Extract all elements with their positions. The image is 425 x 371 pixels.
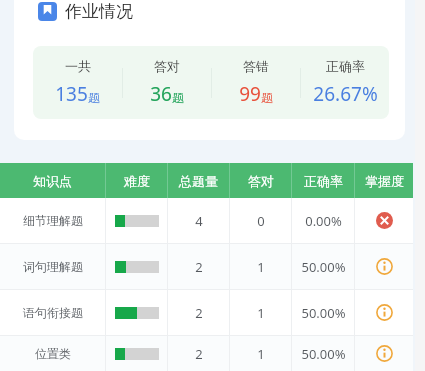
staticText: 答对 (248, 173, 274, 189)
button[interactable]: 语句衔接题 (0, 290, 413, 335)
other: Not mastered (376, 212, 393, 229)
staticText: 99 (239, 81, 261, 107)
staticText: 1 (257, 304, 265, 322)
other: Partially mastered (376, 345, 393, 362)
staticText: 50.00% (301, 304, 346, 322)
button[interactable]: 位置类 (0, 336, 413, 371)
staticText: 作业情况 (65, 1, 133, 22)
staticText: 题 (261, 90, 273, 105)
staticText: 知识点 (33, 173, 72, 189)
staticText: 题 (172, 90, 184, 105)
staticText: 掌握度 (365, 173, 404, 189)
button[interactable]: 细节理解题 (0, 198, 413, 243)
button[interactable]: 词句理解题 (0, 244, 413, 289)
staticText: 50.00% (301, 345, 346, 363)
staticText: 2 (195, 345, 203, 363)
staticText: 36 (150, 81, 172, 107)
other: Partially mastered (376, 258, 393, 275)
staticText: 题 (88, 90, 100, 105)
staticText: 词句理解题 (23, 259, 83, 274)
staticText: 2 (195, 304, 203, 322)
staticText: 总题量 (179, 173, 218, 189)
staticText: 26.67% (313, 81, 378, 107)
other: Partially mastered (376, 304, 393, 321)
staticText: 答对 (154, 58, 180, 74)
other: Homework (38, 2, 57, 21)
staticText: 1 (257, 345, 265, 363)
staticText: 难度 (124, 173, 150, 189)
staticText: 正确率 (326, 58, 365, 74)
staticText: 0.00% (305, 212, 342, 230)
staticText: 50.00% (301, 258, 346, 276)
staticText: 正确率 (304, 173, 343, 189)
staticText: 细节理解题 (23, 213, 83, 228)
staticText: 2 (195, 258, 203, 276)
staticText: 1 (257, 258, 265, 276)
staticText: 位置类 (35, 346, 71, 361)
staticText: 语句衔接题 (23, 305, 83, 320)
staticText: 4 (195, 212, 203, 230)
staticText: 135 (55, 81, 88, 107)
staticText: 0 (257, 212, 265, 230)
staticText: 一共 (65, 58, 91, 74)
staticText: 答错 (243, 58, 269, 74)
